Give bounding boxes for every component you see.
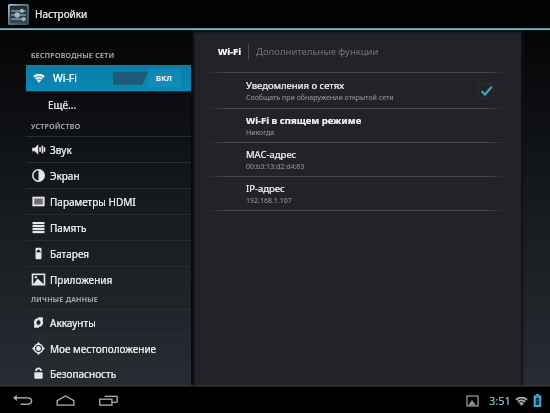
staticText: 192.168.1.107 — [246, 196, 292, 206]
staticText: Параметры HDMI — [50, 195, 136, 209]
other: Скриншот — [467, 396, 478, 406]
staticText: Wi-Fi — [218, 45, 242, 58]
button[interactable]: Безопасность — [0, 362, 191, 385]
staticText: Сообщать при обнаружении открытой сети — [246, 93, 394, 103]
button[interactable]: Wi-Fi — [217, 41, 243, 62]
button[interactable]: Дополнительные функции — [255, 41, 380, 62]
staticText: Настройки — [35, 7, 88, 21]
staticText: Аккаунты — [50, 316, 96, 330]
staticText: Батарея — [50, 247, 90, 261]
button[interactable]: Приложения — [0, 267, 191, 292]
staticText: ЛИЧНЫЕ ДАННЫЕ — [31, 295, 99, 305]
staticText: Wi-Fi — [53, 71, 78, 85]
button[interactable]: Недавние приложения — [87, 387, 130, 413]
button[interactable]: Ещё... — [0, 92, 191, 117]
button[interactable]: Wi-Fi — [26, 65, 191, 91]
button[interactable]: Уведомления о сетях — [476, 81, 496, 101]
staticText: Мое местоположение — [50, 342, 157, 356]
button[interactable]: Экран — [0, 163, 191, 188]
staticText: Экран — [50, 169, 80, 183]
staticText: Уведомления о сетях — [246, 79, 345, 92]
staticText: Ещё... — [48, 98, 77, 112]
button[interactable]: Мое местоположение — [0, 336, 191, 361]
button[interactable]: Параметры HDMI — [0, 189, 191, 214]
staticText: Wi-Fi в спящем режиме — [246, 114, 362, 127]
button[interactable]: Уведомления о сетях — [195, 73, 521, 108]
staticText: MAC-адрес — [246, 148, 297, 161]
staticText: УСТРОЙСТВО — [31, 122, 81, 132]
staticText: Память — [50, 221, 87, 235]
button[interactable]: MAC-адрес — [195, 143, 521, 176]
button[interactable]: Память — [0, 215, 191, 240]
staticText: Никогда — [246, 128, 275, 138]
button[interactable]: Назад — [1, 387, 44, 413]
button[interactable]: Звук — [0, 137, 191, 162]
staticText: ВКЛ — [156, 73, 173, 83]
button[interactable]: Главный экран — [44, 387, 87, 413]
staticText: БЕСПРОВОДНЫЕ СЕТИ — [31, 51, 115, 61]
staticText: 00:b3:13:d2:d4:63 — [246, 162, 305, 172]
button[interactable]: Аккаунты — [0, 310, 191, 335]
staticText: Безопасность — [50, 367, 117, 381]
button[interactable]: IP-адрес — [195, 177, 521, 210]
button[interactable]: Wi-Fi в спящем режиме — [195, 109, 521, 142]
button[interactable]: Батарея — [0, 241, 191, 266]
staticText: Звук — [50, 143, 72, 157]
staticText: 3:51 — [489, 393, 511, 408]
staticText: IP-адрес — [246, 182, 285, 195]
staticText: Приложения — [50, 273, 113, 287]
staticText: Дополнительные функции — [256, 45, 379, 58]
